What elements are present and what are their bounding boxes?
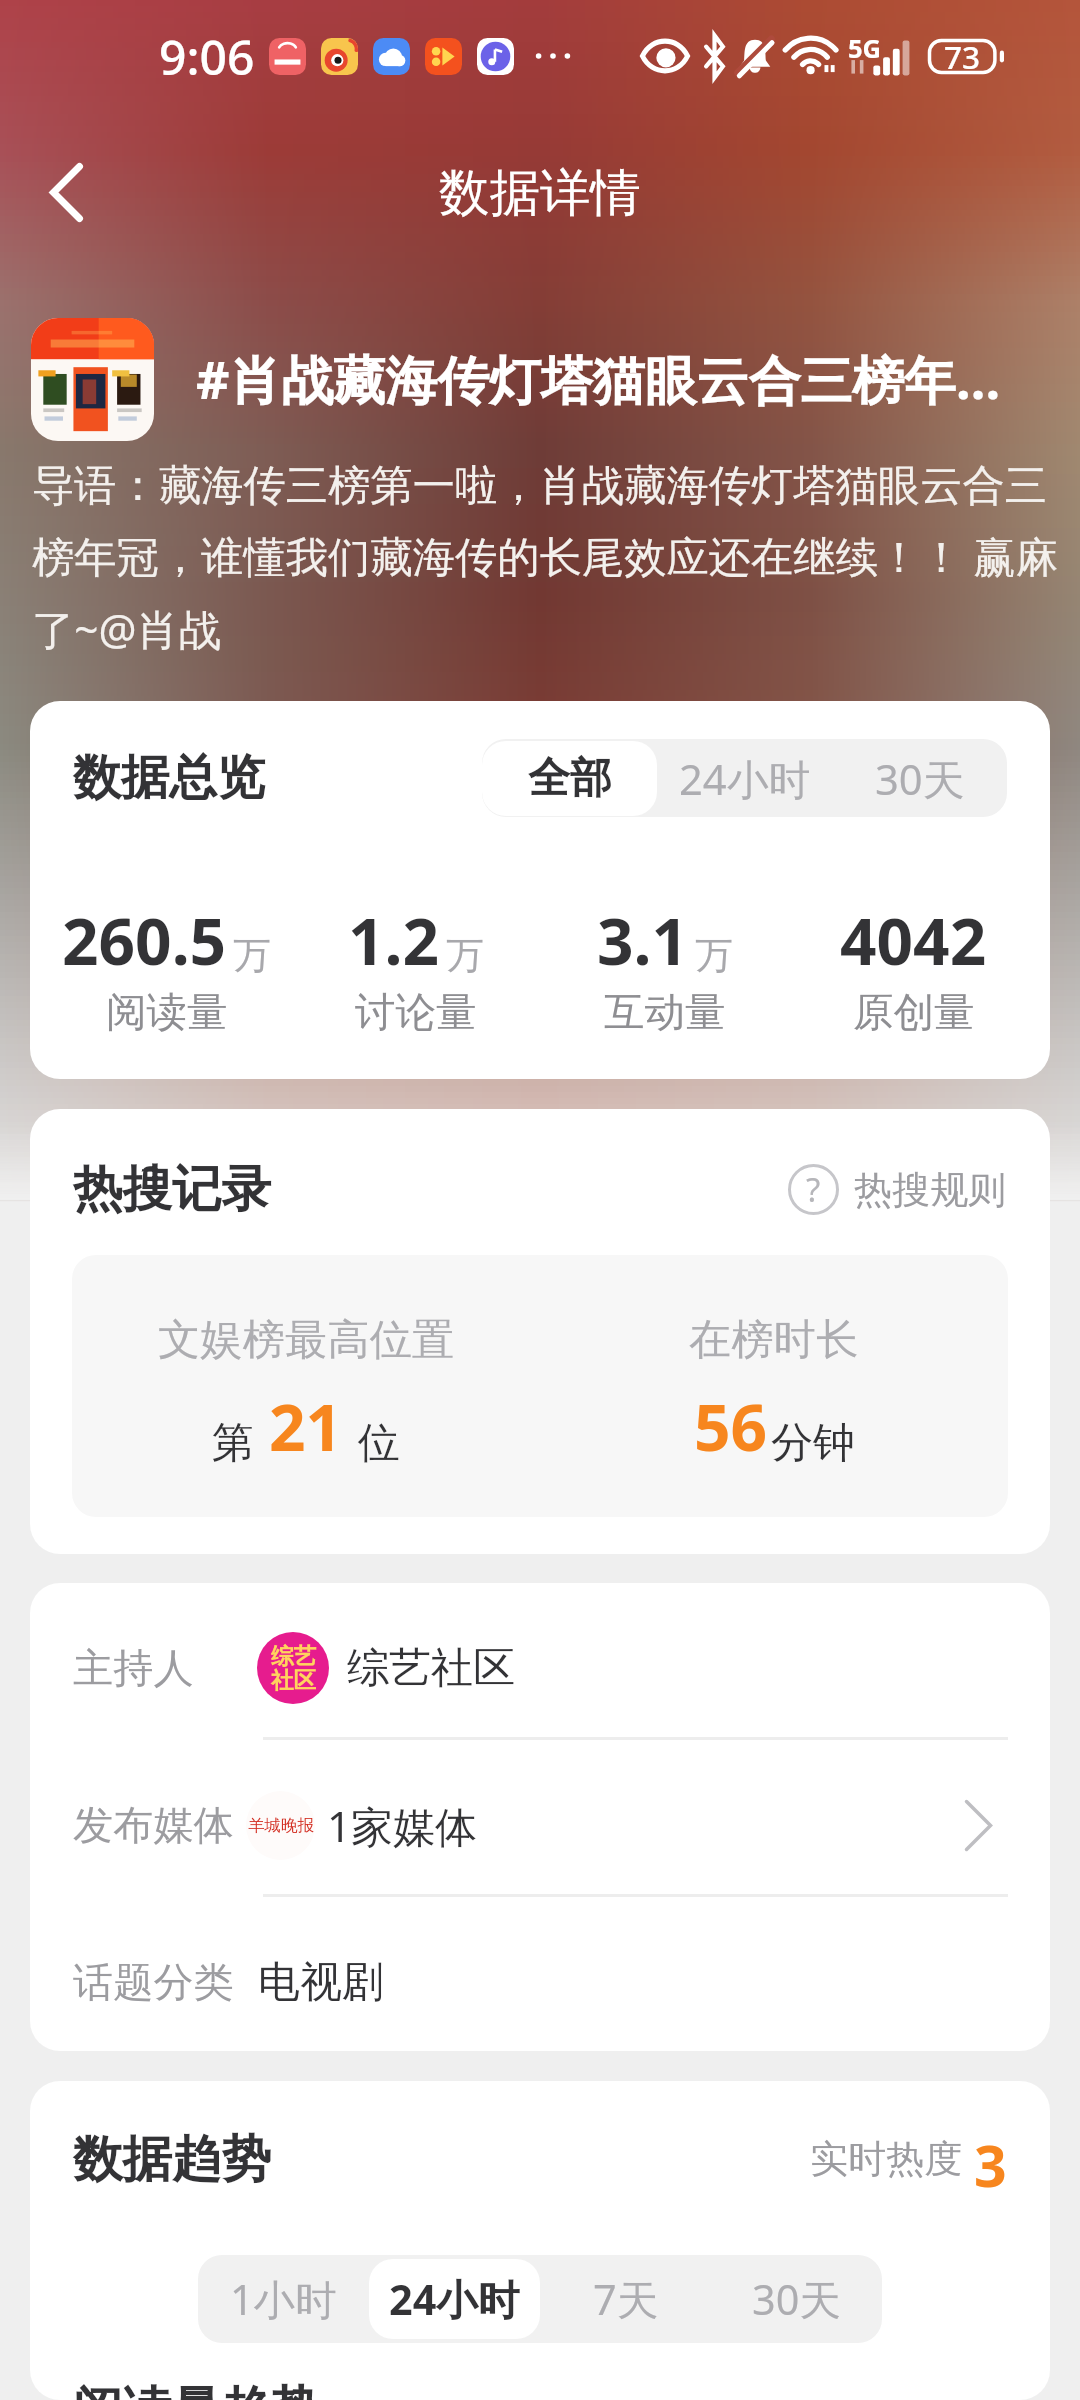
staticText: 文娱榜最高位置 (158, 1313, 455, 1366)
staticText: 5G (848, 31, 882, 66)
button[interactable]: 7天 (540, 2259, 711, 2339)
staticText: 导语：藏海传三榜第一啦，肖战藏海传灯塔猫眼云合三榜年冠，谁懂我们藏海传的长尾效应… (32, 459, 1071, 657)
staticText: 260.5 (62, 897, 227, 984)
staticText: #肖战藏海传灯塔猫眼云合三榜年… (196, 344, 1001, 415)
staticText: 21 (269, 1383, 343, 1470)
staticText: 9:06 (159, 24, 255, 89)
staticText: 热搜记录 (73, 1158, 271, 1220)
staticText: 1家媒体 (327, 1797, 478, 1854)
staticText: 全部 (528, 752, 612, 805)
staticText: 主持人 (73, 1643, 194, 1694)
staticText: 发布媒体 (73, 1800, 234, 1851)
button[interactable]: 全部 (482, 741, 657, 816)
staticText: 万 (695, 932, 733, 979)
staticText: 数据详情 (439, 161, 641, 224)
other: More media (948, 1795, 1008, 1855)
staticText: 热搜规则 (854, 1166, 1007, 1214)
staticText: 4042 (840, 897, 987, 984)
button[interactable]: Back (3, 146, 129, 238)
staticText: 56 (694, 1383, 768, 1470)
staticText: 万 (233, 932, 271, 979)
staticText: 1.2 (348, 897, 440, 984)
staticText: ? (806, 1167, 821, 1212)
staticText: 30天 (752, 2271, 841, 2328)
staticText: 3 (974, 2126, 1007, 2192)
button[interactable]: 主持人 (30, 1583, 1050, 1737)
staticText: 阅读量 (106, 987, 228, 1038)
staticText: 话题分类 (73, 1957, 234, 2008)
staticText: 24小时 (389, 2271, 520, 2328)
staticText: 1小时 (230, 2271, 337, 2328)
button[interactable]: 24小时 (657, 741, 832, 816)
staticText: 7天 (593, 2271, 659, 2328)
staticText: 30天 (875, 750, 965, 807)
staticText: 万 (446, 932, 484, 979)
staticText: 互动量 (604, 987, 726, 1038)
button[interactable]: 发布媒体 (30, 1740, 1050, 1894)
staticText: 3.1 (597, 897, 689, 984)
staticText: 第 (212, 1417, 254, 1470)
staticText: 73 (944, 35, 981, 78)
staticText: 位 (358, 1417, 400, 1470)
staticText: 数据总览 (73, 748, 265, 808)
staticText: 分钟 (771, 1417, 855, 1470)
staticText: 讨论量 (355, 987, 477, 1038)
staticText: 综艺社区 (347, 1642, 515, 1695)
staticText: 原创量 (853, 987, 975, 1038)
staticText: 羊城晚报 (248, 1815, 314, 1836)
button[interactable]: 24小时 (369, 2259, 540, 2339)
button[interactable]: 实时热度 (810, 2126, 1007, 2192)
staticText: 阅读量趋势 (73, 2379, 321, 2400)
staticText: 实时热度 (810, 2135, 963, 2183)
staticText: 数据趋势 (73, 2128, 271, 2190)
button[interactable]: 1小时 (198, 2259, 369, 2339)
button[interactable]: 30天 (711, 2259, 882, 2339)
button[interactable]: ? (788, 1164, 1007, 1215)
button[interactable]: 30天 (832, 741, 1007, 816)
staticText: 综艺 社区 (271, 1642, 316, 1695)
staticText: 电视剧 (258, 1956, 384, 2009)
staticText: 24小时 (679, 750, 811, 807)
staticText: 在榜时长 (689, 1313, 859, 1366)
